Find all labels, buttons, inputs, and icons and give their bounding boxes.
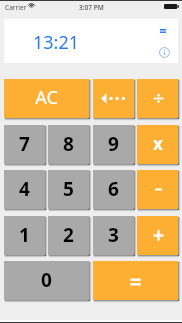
staticText: 7 [19, 131, 30, 157]
staticText: 0 [41, 267, 52, 293]
button[interactable]: 3 [93, 216, 134, 255]
button[interactable]: 9 [93, 125, 134, 164]
staticText: 13:21 [33, 30, 80, 55]
staticText: 5 [63, 176, 74, 202]
button[interactable]: Equals [93, 261, 178, 300]
staticText: 6 [108, 176, 119, 202]
button[interactable]: Divide [137, 79, 178, 118]
button[interactable]: 4 [4, 170, 45, 209]
button[interactable]: 0 [4, 261, 89, 300]
staticText: 2 [63, 222, 74, 248]
staticText: x [153, 132, 163, 155]
button[interactable]: 2 [48, 216, 89, 255]
staticText: 8 [63, 131, 74, 157]
button[interactable]: Plus [137, 216, 178, 255]
staticText: AC [35, 85, 58, 110]
button[interactable]: AC [4, 79, 89, 118]
staticText: 9 [108, 131, 119, 157]
button[interactable]: 7 [4, 125, 45, 164]
staticText: Carrier [5, 3, 27, 12]
button[interactable]: 1 [4, 216, 45, 255]
staticText: 3:07 PM [79, 3, 104, 12]
staticText: 4 [19, 176, 30, 202]
staticText: 3 [108, 222, 119, 248]
button[interactable]: 5 [48, 170, 89, 209]
button[interactable]: x [137, 125, 178, 164]
button[interactable]: 8 [48, 125, 89, 164]
button[interactable]: 6 [93, 170, 134, 209]
staticText: 1 [19, 222, 30, 248]
button[interactable]: Backspace [93, 79, 134, 118]
button[interactable]: Minus [137, 170, 178, 209]
